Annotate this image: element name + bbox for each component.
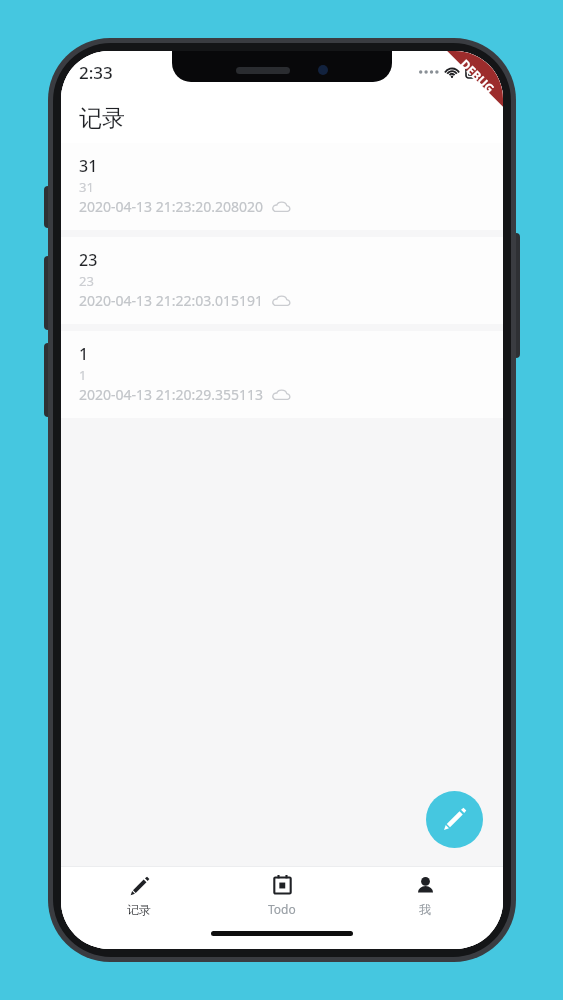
staticText: 2020-04-13 21:22:03.015191 xyxy=(79,291,264,310)
staticText: Todo xyxy=(268,901,296,917)
staticText: 1 xyxy=(79,343,89,365)
staticText: 2020-04-13 21:20:29.355113 xyxy=(79,385,264,404)
staticText: 2020-04-13 21:23:20.208020 xyxy=(79,197,264,216)
staticText: DEBUG xyxy=(457,55,498,96)
button[interactable]: 23 xyxy=(61,237,503,324)
staticText: 23 xyxy=(79,272,94,290)
button[interactable]: 记录 xyxy=(74,867,204,925)
staticText: 31 xyxy=(79,178,94,196)
staticText: 23 xyxy=(79,249,98,271)
staticText: 我 xyxy=(419,902,431,917)
staticText: 31 xyxy=(79,155,98,177)
staticText: 记录 xyxy=(127,902,151,917)
button[interactable]: Todo xyxy=(217,867,347,925)
button[interactable]: 我 xyxy=(360,867,490,925)
button[interactable]: 31 xyxy=(61,143,503,230)
staticText: 2:33 xyxy=(79,61,113,84)
button[interactable]: 1 xyxy=(61,331,503,418)
staticText: 1 xyxy=(79,366,87,384)
button[interactable]: New record xyxy=(426,791,483,848)
staticText: 记录 xyxy=(79,104,125,133)
